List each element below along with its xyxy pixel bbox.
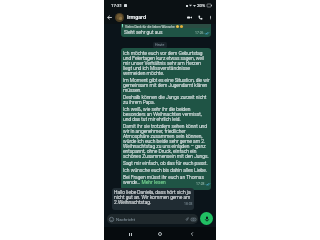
staticText: 17:28 [196,182,205,186]
staticText: Heute [155,43,165,47]
staticText: Hallo liebe Daniela, dass hört sich ja n… [114,189,193,205]
button[interactable]: Home [154,228,166,240]
button[interactable]: Hallo liebe Daniela, dass hört sich ja n… [112,188,194,210]
staticText: 17:26 [195,31,204,35]
staticText: Sieht sehr gut aus [124,29,163,35]
staticText: Ich möchte euch vor dem Geburtstag und F… [123,50,210,76]
button[interactable]: Call [195,12,206,23]
button[interactable]: Ich möchte euch vor dem Geburtstag und F… [121,48,211,190]
staticText: Irmgard [127,14,146,20]
button[interactable]: Du [121,20,211,37]
staticText: Du [125,21,129,25]
staticText: Damit ihr sie trotzdem sehen könnt und w… [123,123,210,159]
button[interactable]: Voice message [200,212,213,225]
button[interactable]: Nachricht [107,214,198,224]
button[interactable]: Recent apps [124,228,136,240]
staticText: Vielen Dank für die lieben Wünsche [125,25,175,28]
button[interactable]: Back [186,228,198,240]
button[interactable]: Back [104,12,115,23]
staticText: 17:31 [111,3,122,8]
staticText: Sagt mir einfach, ob das für euch passt. [123,160,208,166]
staticText: 18:03 [184,202,193,206]
staticText: Ich weiß, wie sehr ihr die beiden besond… [123,106,210,122]
button[interactable]: More options [206,13,215,22]
staticText: Ich wünsche euch bis dahin alles Liebe. [123,167,207,173]
staticText: 20% [197,3,206,8]
staticText: Bei Fragen müsst ihr euch an Thomas wend… [123,174,210,185]
staticText: Deshalb können die Jungs zurzeit nicht z… [123,94,210,105]
staticText: Im Moment gibt es eine Situation, die wi… [123,77,210,93]
staticText: Nachricht [116,217,135,222]
button[interactable]: Video call [184,12,195,23]
